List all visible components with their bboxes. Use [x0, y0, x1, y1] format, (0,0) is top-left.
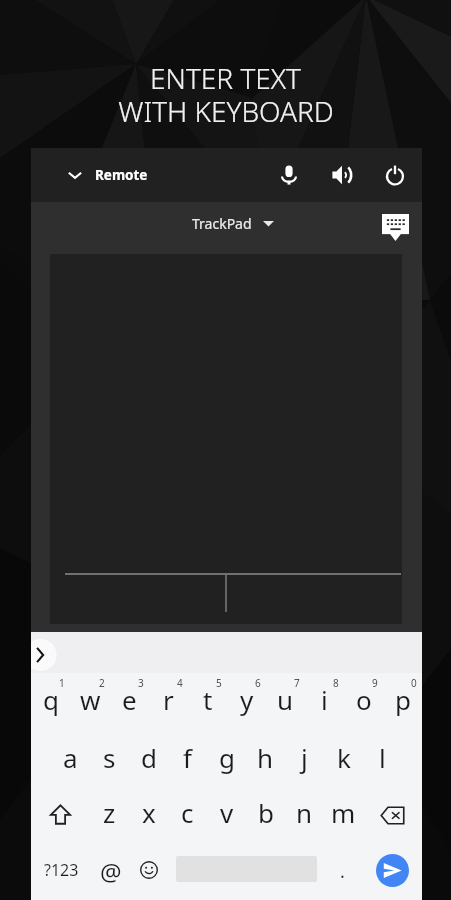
staticText: 2 — [99, 676, 105, 690]
staticText: 4 — [177, 676, 183, 690]
staticText: 0 — [411, 676, 417, 690]
staticText: TrackPad — [192, 214, 252, 233]
staticText: @ — [100, 855, 122, 888]
button[interactable]: x — [129, 787, 168, 844]
button[interactable]: 4 — [149, 673, 188, 730]
button[interactable]: 1 — [31, 673, 71, 730]
staticText: h — [257, 740, 274, 775]
staticText: a — [63, 740, 78, 775]
staticText: i — [321, 682, 328, 717]
button[interactable]: Microphone — [271, 157, 307, 193]
button[interactable]: Space — [168, 844, 325, 900]
staticText: w — [80, 682, 101, 717]
staticText: j — [301, 740, 308, 775]
staticText: y — [240, 682, 254, 717]
button[interactable]: Shift — [31, 787, 90, 844]
button[interactable]: g — [207, 730, 246, 787]
staticText: n — [296, 795, 313, 830]
staticText: t — [203, 682, 213, 717]
staticText: l — [379, 740, 386, 775]
button[interactable]: a — [51, 730, 90, 787]
button[interactable]: More suggestions — [31, 639, 63, 671]
staticText: r — [163, 682, 174, 717]
button[interactable]: Emoji — [130, 844, 168, 900]
button[interactable]: k — [324, 730, 363, 787]
button[interactable]: 0 — [383, 673, 422, 730]
staticText: o — [356, 682, 372, 717]
button[interactable]: 3 — [110, 673, 149, 730]
button[interactable]: 5 — [188, 673, 227, 730]
button[interactable]: TrackPad — [182, 208, 284, 239]
button[interactable]: l — [363, 730, 402, 787]
button[interactable]: z — [90, 787, 129, 844]
staticText: 6 — [255, 676, 261, 690]
staticText: ENTER TEXT — [150, 59, 301, 97]
staticText: 8 — [333, 676, 339, 690]
staticText: x — [142, 795, 156, 830]
staticText: b — [258, 795, 274, 830]
button[interactable]: m — [324, 787, 363, 844]
button[interactable]: 9 — [344, 673, 383, 730]
button[interactable]: Volume — [324, 157, 360, 193]
button[interactable]: h — [246, 730, 285, 787]
staticText: f — [183, 740, 192, 775]
staticText: v — [220, 795, 234, 830]
staticText: 1 — [59, 676, 65, 690]
button[interactable]: d — [129, 730, 168, 787]
button[interactable]: @ — [92, 844, 130, 900]
button[interactable]: s — [90, 730, 129, 787]
staticText: ?123 — [44, 859, 79, 881]
button[interactable]: Remote — [31, 158, 158, 192]
staticText: k — [337, 740, 351, 775]
staticText: Remote — [95, 166, 148, 184]
button[interactable]: v — [207, 787, 246, 844]
button[interactable]: Send — [370, 844, 422, 900]
staticText: e — [122, 682, 137, 717]
button[interactable]: 6 — [227, 673, 266, 730]
button[interactable]: b — [246, 787, 285, 844]
staticText: 7 — [294, 676, 300, 690]
button[interactable]: 2 — [71, 673, 110, 730]
staticText: d — [141, 740, 157, 775]
staticText: 9 — [372, 676, 378, 690]
button[interactable]: c — [168, 787, 207, 844]
button[interactable]: Hide keyboard — [376, 208, 414, 246]
staticText: s — [103, 740, 116, 775]
staticText: p — [395, 682, 411, 717]
staticText: m — [331, 795, 356, 830]
button[interactable]: 8 — [305, 673, 344, 730]
button[interactable]: . — [325, 844, 370, 900]
button[interactable]: n — [285, 787, 324, 844]
button[interactable]: Track pad — [50, 254, 402, 624]
staticText: g — [219, 740, 235, 775]
button[interactable]: j — [285, 730, 324, 787]
staticText: 5 — [216, 676, 222, 690]
staticText: 3 — [138, 676, 144, 690]
button[interactable]: 7 — [266, 673, 305, 730]
staticText: . — [340, 859, 345, 884]
staticText: u — [277, 682, 294, 717]
staticText: c — [181, 795, 194, 830]
staticText: WITH KEYBOARD — [118, 92, 334, 130]
button[interactable]: Power — [377, 157, 413, 193]
staticText: z — [103, 795, 116, 830]
staticText: q — [43, 682, 59, 717]
button[interactable]: ?123 — [31, 844, 92, 900]
button[interactable]: f — [168, 730, 207, 787]
button[interactable]: Backspace — [363, 787, 422, 844]
